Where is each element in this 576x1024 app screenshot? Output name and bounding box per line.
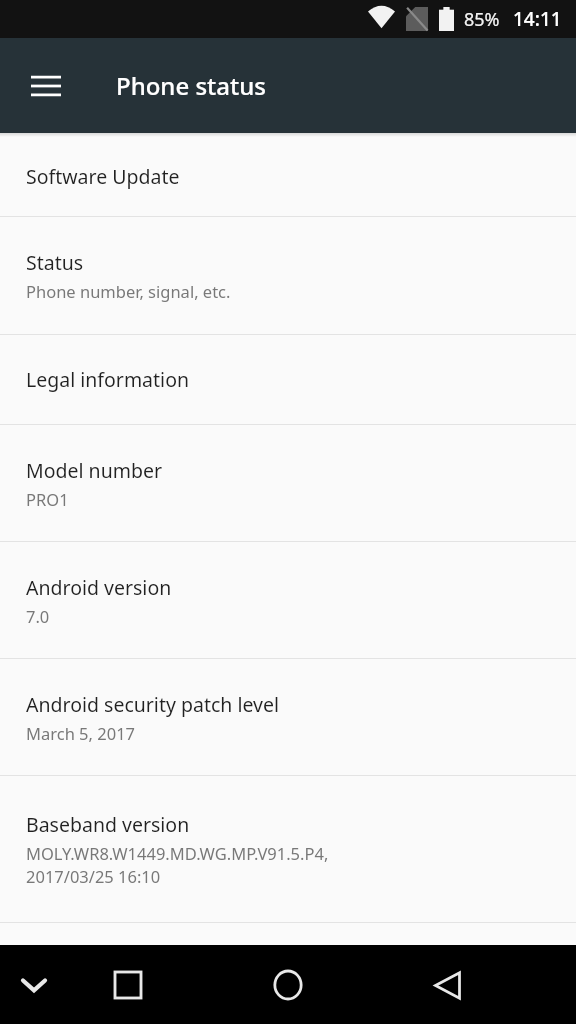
button[interactable]: Back — [421, 959, 473, 1011]
staticText: 85% — [464, 7, 500, 32]
staticText: Baseband version — [26, 811, 190, 838]
staticText: MOLY.WR8.W1449.MD.WG.MP.V91.5.P4, 2017/0… — [26, 842, 329, 888]
staticText: March 5, 2017 — [26, 722, 136, 744]
button[interactable]: Status — [0, 217, 576, 334]
staticText: Legal information — [26, 366, 189, 393]
staticText: Android version — [26, 574, 172, 601]
button[interactable]: Model number — [0, 425, 576, 541]
button[interactable]: Legal information — [0, 335, 576, 424]
button[interactable]: Android version — [0, 542, 576, 658]
staticText: Phone status — [116, 69, 266, 102]
staticText: Software Update — [26, 163, 180, 190]
button[interactable]: Android security patch level — [0, 659, 576, 775]
staticText: 14:11 — [513, 6, 562, 32]
button[interactable]: Recent apps — [102, 959, 154, 1011]
staticText: Model number — [26, 457, 162, 484]
staticText: Status — [26, 249, 84, 276]
staticText: PRO1 — [26, 488, 69, 510]
button[interactable]: Software Update — [0, 137, 576, 216]
staticText: 7.0 — [26, 605, 50, 627]
button[interactable]: Home — [262, 959, 314, 1011]
staticText: Android security patch level — [26, 691, 279, 718]
button[interactable]: Baseband version — [0, 776, 576, 922]
staticText: Phone number, signal, etc. — [26, 280, 231, 302]
button[interactable]: Open navigation menu — [16, 56, 76, 116]
button[interactable]: Hide keyboard — [8, 959, 60, 1011]
